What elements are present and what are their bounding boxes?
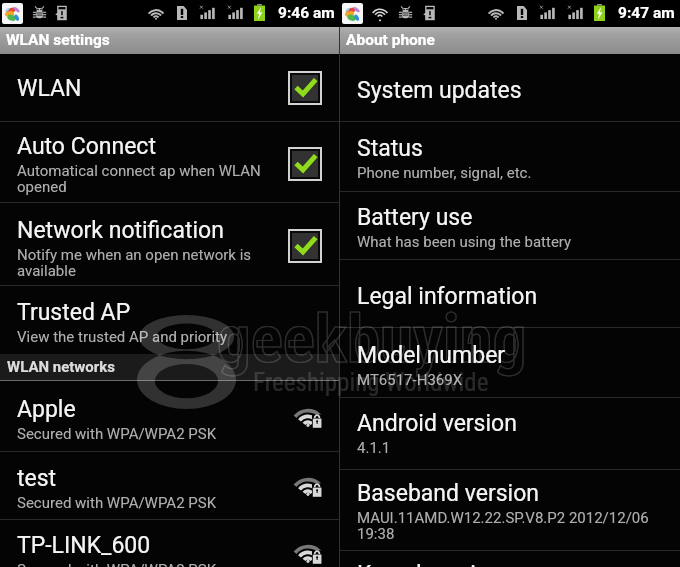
staticText: 9:47 am bbox=[618, 4, 675, 22]
button[interactable]: Baseband version bbox=[340, 470, 680, 550]
staticText: View the trusted AP and priority bbox=[17, 328, 228, 346]
staticText: About phone bbox=[346, 31, 435, 49]
button[interactable]: Toggle bbox=[288, 147, 322, 181]
button[interactable]: Legal information bbox=[340, 260, 680, 327]
button[interactable]: WLAN bbox=[0, 54, 340, 121]
staticText: 9:46 am bbox=[278, 4, 335, 22]
button[interactable]: TP-LINK_600 bbox=[0, 520, 340, 566]
button[interactable]: Apple bbox=[0, 381, 340, 451]
staticText: WLAN settings bbox=[6, 31, 110, 49]
other: Gallery bbox=[342, 3, 363, 24]
staticText: Status bbox=[357, 135, 423, 162]
other: Secured network bbox=[296, 544, 322, 564]
button[interactable]: System updates bbox=[340, 54, 680, 121]
staticText: test bbox=[17, 465, 57, 492]
staticText: Automatical connect ap when WLAN bbox=[17, 162, 261, 180]
staticText: Android version bbox=[357, 410, 517, 437]
staticText: Model number bbox=[357, 342, 506, 369]
staticText: Legal information bbox=[357, 283, 538, 310]
button[interactable]: Status bbox=[340, 122, 680, 191]
staticText: Auto Connect bbox=[17, 133, 156, 160]
staticText: Notify me when an open network is bbox=[17, 246, 252, 264]
staticText: Network notification bbox=[17, 217, 224, 244]
other: Gallery bbox=[2, 3, 23, 24]
staticText: opened bbox=[17, 178, 67, 196]
button[interactable]: Network notification bbox=[0, 203, 340, 285]
button[interactable]: Battery use bbox=[340, 192, 680, 259]
staticText: Baseband version bbox=[357, 480, 539, 507]
staticText: 4.1.1 bbox=[357, 439, 391, 457]
other: Secured network bbox=[296, 477, 322, 497]
staticText: What has been using the battery bbox=[357, 233, 572, 251]
button[interactable]: Model number bbox=[340, 328, 680, 397]
staticText: available bbox=[17, 262, 76, 280]
button[interactable]: Toggle bbox=[288, 71, 322, 105]
staticText: Kernel version bbox=[357, 561, 502, 567]
staticText: Secured with WPA/WPA2 PSK bbox=[17, 494, 217, 512]
staticText: Trusted AP bbox=[17, 299, 131, 326]
staticText: MT6517-H369X bbox=[357, 371, 463, 389]
staticText: geekbuying bbox=[217, 300, 527, 379]
staticText: Phone number, signal, etc. bbox=[357, 164, 532, 182]
staticText: Freeshipping Worldwide bbox=[253, 368, 489, 397]
button[interactable]: Android version bbox=[340, 398, 680, 469]
button[interactable]: Kernel version bbox=[340, 551, 680, 567]
staticText: TP-LINK_600 bbox=[17, 532, 151, 559]
staticText: MAUI.11AMD.W12.22.SP.V8.P2 2012/12/06 bbox=[357, 509, 649, 527]
other: Secured network bbox=[296, 408, 322, 428]
button[interactable]: Trusted AP bbox=[0, 286, 340, 354]
staticText: Battery use bbox=[357, 204, 473, 231]
staticText: Secured with WPA/WPA2 PSK bbox=[17, 425, 217, 443]
staticText: System updates bbox=[357, 77, 522, 104]
staticText: Apple bbox=[17, 396, 76, 423]
button[interactable]: Auto Connect bbox=[0, 122, 340, 202]
staticText: WLAN bbox=[17, 75, 82, 102]
button[interactable]: test bbox=[0, 452, 340, 519]
staticText: 19:38 bbox=[357, 525, 395, 543]
staticText: Secured with WPA/WPA2 PSK bbox=[17, 561, 217, 567]
staticText: WLAN networks bbox=[7, 358, 116, 376]
button[interactable]: Toggle bbox=[288, 229, 322, 263]
